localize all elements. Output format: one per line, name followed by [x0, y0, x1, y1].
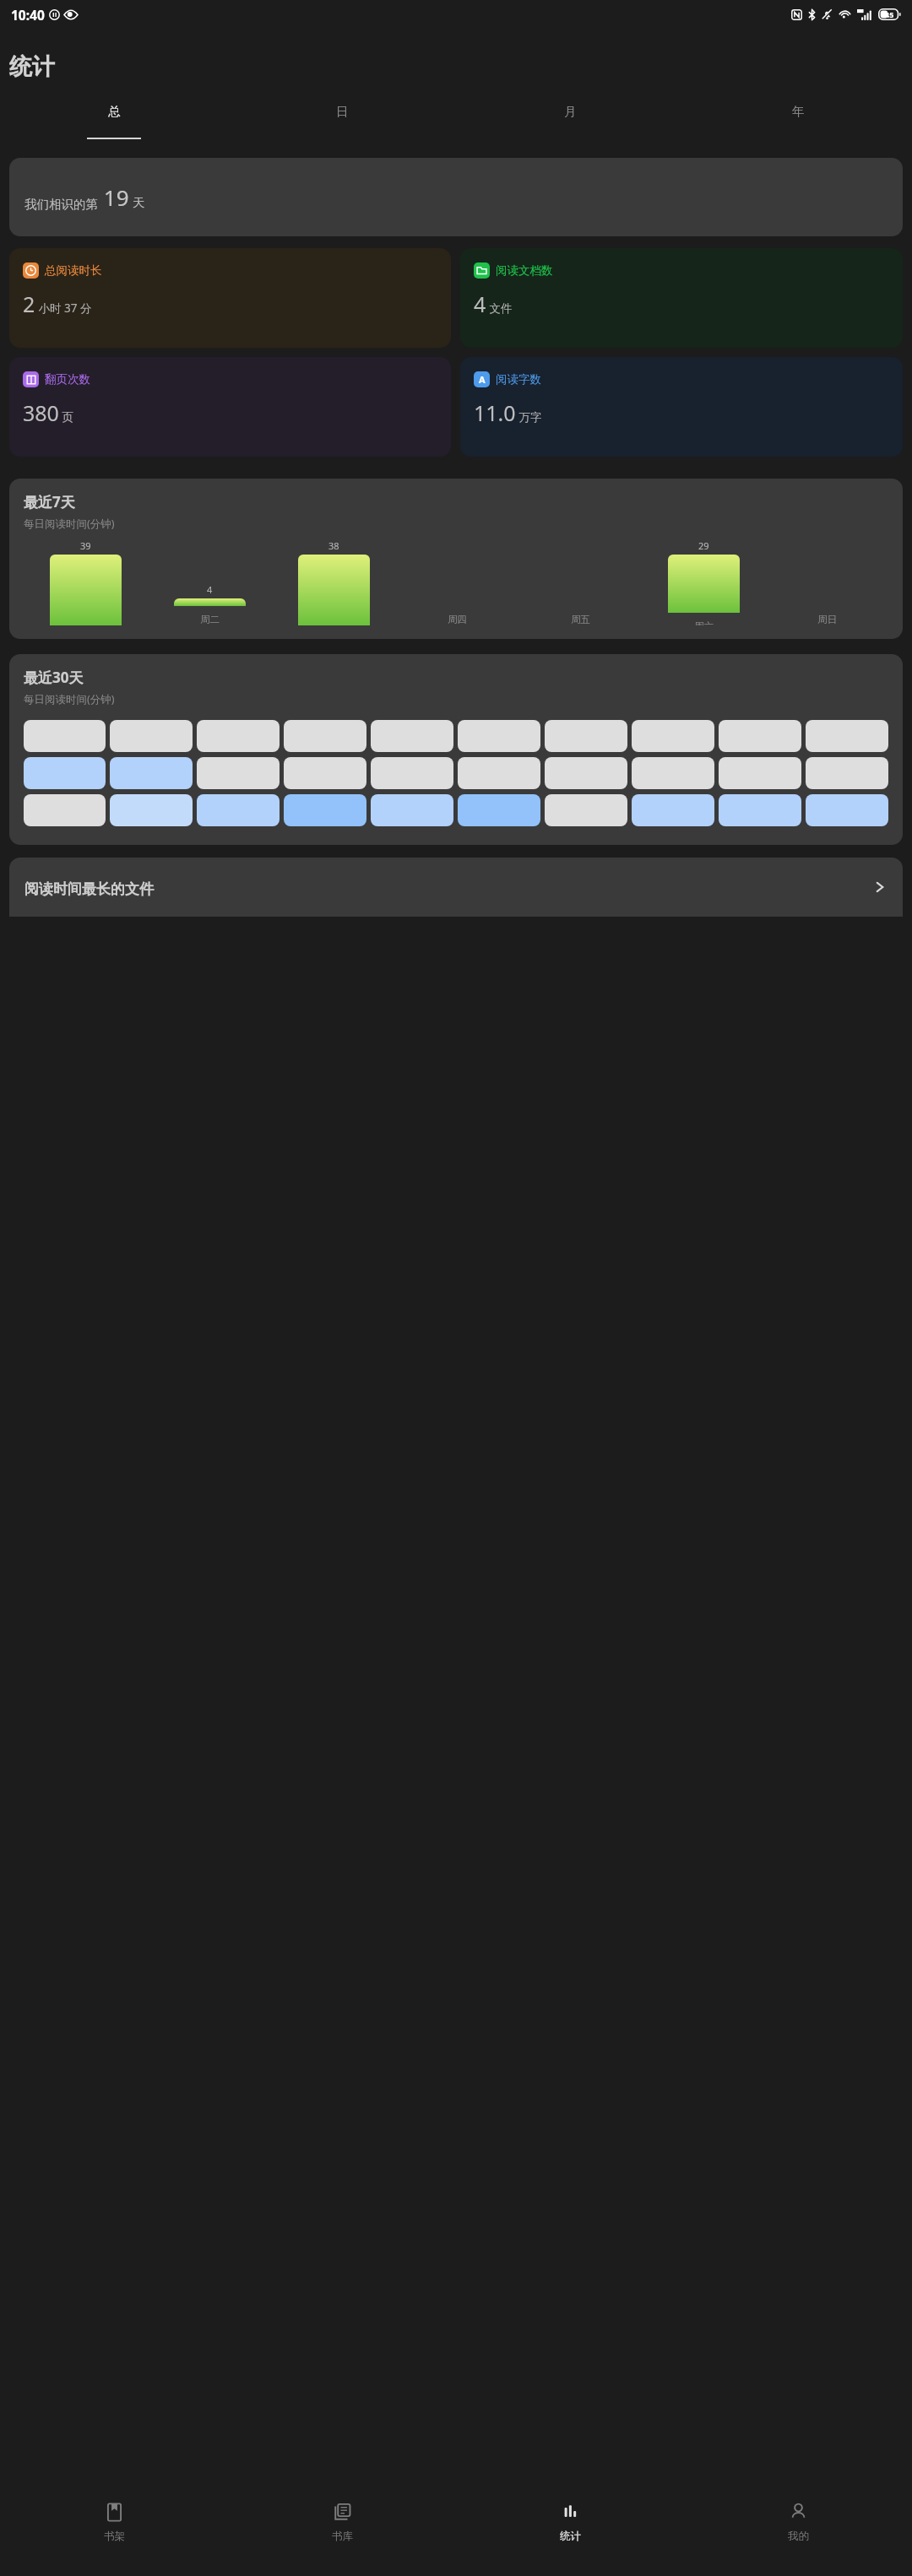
button[interactable]: 月: [456, 96, 684, 127]
staticText: 周二: [200, 614, 220, 625]
staticText: A: [479, 373, 486, 386]
staticText: 阅读时间最长的文件: [24, 880, 154, 898]
staticText: 每日阅读时间(分钟): [24, 692, 115, 706]
staticText: 统计: [9, 52, 55, 81]
staticText: 周五: [571, 614, 590, 625]
staticText: 19: [98, 182, 129, 212]
staticText: 最近7天: [24, 492, 75, 511]
button[interactable]: 统计: [456, 2493, 684, 2576]
staticText: 月: [564, 104, 577, 119]
staticText: 每日阅读时间(分钟): [24, 517, 115, 531]
button[interactable]: 翻页次数: [9, 357, 451, 457]
button[interactable]: 我们相识的第: [9, 158, 903, 236]
button[interactable]: 我的: [684, 2493, 912, 2576]
staticText: 页: [59, 409, 74, 425]
staticText: 文件: [486, 300, 513, 316]
staticText: 天: [129, 193, 145, 210]
staticText: 最近30天: [24, 668, 84, 687]
staticText: 小时 37 分: [35, 300, 92, 316]
staticText: 我们相识的第: [24, 197, 98, 212]
staticText: 总阅读时长: [45, 263, 102, 278]
button[interactable]: 总阅读时长: [9, 248, 451, 348]
staticText: 10:40: [11, 6, 45, 24]
button[interactable]: 总: [0, 96, 228, 127]
staticText: 2: [23, 290, 35, 318]
staticText: 45: [885, 9, 894, 19]
staticText: 周四: [448, 614, 467, 625]
button[interactable]: 年: [684, 96, 912, 127]
staticText: 我的: [788, 2530, 809, 2543]
staticText: 书架: [104, 2530, 125, 2543]
button[interactable]: 日: [228, 96, 456, 127]
staticText: 周日: [817, 614, 837, 625]
staticText: 阅读字数: [496, 372, 541, 387]
staticText: 周六: [694, 620, 714, 625]
staticText: 11.0: [474, 398, 516, 427]
button[interactable]: 书架: [0, 2493, 228, 2576]
staticText: 29: [698, 539, 709, 552]
staticText: 统计: [560, 2530, 581, 2543]
button[interactable]: 阅读时间最长的文件: [9, 858, 903, 917]
staticText: 4: [474, 290, 486, 318]
button[interactable]: 书库: [228, 2493, 456, 2576]
staticText: 39: [80, 539, 91, 552]
staticText: 翻页次数: [45, 372, 90, 387]
button[interactable]: 阅读文档数: [460, 248, 903, 348]
staticText: 日: [336, 104, 349, 119]
staticText: 4: [207, 583, 213, 596]
staticText: 阅读文档数: [496, 263, 553, 278]
staticText: 年: [792, 104, 805, 119]
staticText: 总: [108, 104, 121, 119]
staticText: 38: [328, 539, 339, 552]
other: 更多: [872, 879, 888, 895]
staticText: 380: [23, 398, 59, 427]
staticText: 万字: [516, 409, 542, 425]
staticText: 书库: [332, 2530, 353, 2543]
button[interactable]: A: [460, 357, 903, 457]
